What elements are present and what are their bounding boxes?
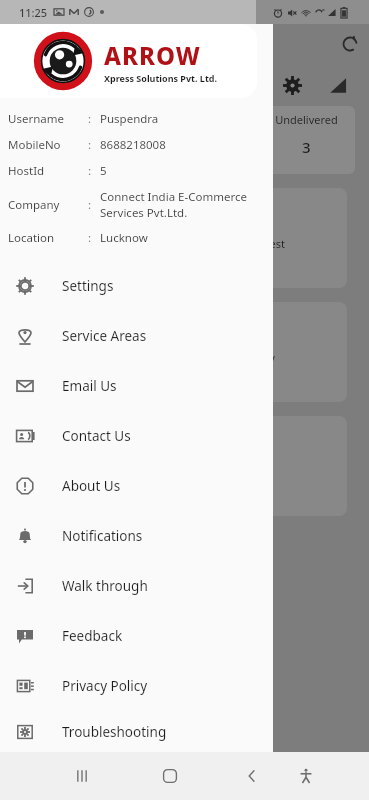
staticText: Email Us xyxy=(62,377,117,395)
button[interactable]: Feedback xyxy=(0,611,273,661)
staticText: Lucknow xyxy=(100,230,148,246)
staticText: ivery xyxy=(250,350,275,365)
button[interactable]: About Us xyxy=(0,461,273,511)
button[interactable]: ng xyxy=(250,416,347,516)
staticText: HostId xyxy=(8,163,88,179)
staticText: 8688218008 xyxy=(100,137,166,153)
staticText: About Us xyxy=(62,477,121,495)
staticText: Service Areas xyxy=(62,327,147,345)
button[interactable]: Recents xyxy=(60,754,104,798)
button[interactable]: Email Us xyxy=(0,361,273,411)
staticText: Username xyxy=(8,111,88,127)
staticText: Privacy Policy xyxy=(62,677,148,695)
button[interactable]: Contact Us xyxy=(0,411,273,461)
staticText: : xyxy=(88,163,100,179)
staticText: Company xyxy=(8,197,88,213)
button[interactable]: Accessibility xyxy=(286,756,326,796)
staticText: : xyxy=(88,197,100,213)
staticText: Location xyxy=(8,230,88,246)
button[interactable]: ivery xyxy=(250,302,347,402)
button[interactable]: Walk through xyxy=(0,561,273,611)
button[interactable]: anifest xyxy=(250,188,347,288)
staticText: Walk through xyxy=(62,577,148,595)
button[interactable]: Service Areas xyxy=(0,311,273,361)
staticText: 3 xyxy=(302,137,311,157)
staticText: : xyxy=(88,230,100,246)
staticText: anifest xyxy=(250,236,286,251)
button[interactable]: Privacy Policy xyxy=(0,661,273,711)
staticText: Puspendra xyxy=(100,111,159,127)
staticText: : xyxy=(88,137,100,153)
button[interactable]: Troubleshooting xyxy=(0,711,273,752)
staticText: MobileNo xyxy=(8,137,88,153)
staticText: Troubleshooting xyxy=(62,723,167,741)
staticText: ARROW xyxy=(104,39,201,72)
staticText: 11:25 xyxy=(19,5,48,20)
button[interactable]: Home xyxy=(148,754,192,798)
staticText: Contact Us xyxy=(62,427,131,445)
button[interactable]: Notifications xyxy=(0,511,273,561)
button[interactable]: Back xyxy=(232,756,272,796)
staticText: Xpress Solutions Pvt. Ltd. xyxy=(104,72,218,84)
staticText: Connect India E-Commerce Services Pvt.Lt… xyxy=(100,189,247,220)
staticText: : xyxy=(88,111,100,127)
staticText: 5 xyxy=(100,163,107,179)
staticText: Notifications xyxy=(62,527,143,545)
staticText: Feedback xyxy=(62,627,123,645)
staticText: Undelivered xyxy=(275,112,338,127)
staticText: Settings xyxy=(62,277,114,295)
button[interactable]: Settings xyxy=(0,261,273,311)
